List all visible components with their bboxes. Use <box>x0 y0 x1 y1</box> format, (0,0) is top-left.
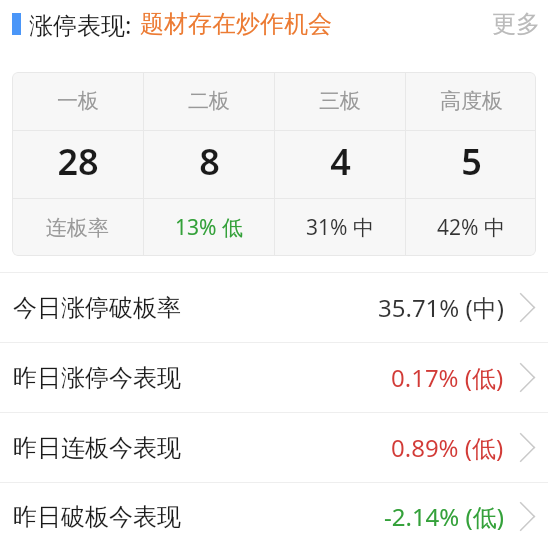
staticText: 昨日连板今表现 <box>13 433 181 463</box>
staticText: 31% 中 <box>306 213 374 242</box>
staticText: 高度板 <box>440 88 503 114</box>
button[interactable]: 更多 <box>482 3 548 45</box>
other: 查看详情 <box>520 293 535 322</box>
staticText: 三板 <box>319 88 361 114</box>
button[interactable]: 8 <box>144 131 274 198</box>
staticText: 二板 <box>188 88 230 114</box>
button[interactable]: 昨日涨停今表现 <box>0 342 548 412</box>
button[interactable]: 28 <box>12 131 143 198</box>
staticText: 0.17% (低) <box>391 361 504 394</box>
other: 查看详情 <box>520 363 535 392</box>
staticText: 0.89% (低) <box>391 431 504 464</box>
button[interactable]: 三板 <box>275 72 405 130</box>
button[interactable]: 连板率 <box>12 199 143 256</box>
staticText: 28 <box>57 137 99 186</box>
staticText: -2.14% (低) <box>384 500 504 533</box>
staticText: 42% 中 <box>437 213 505 242</box>
button[interactable]: 13% 低 <box>144 199 274 256</box>
button[interactable]: 42% 中 <box>406 199 536 256</box>
button[interactable]: 4 <box>275 131 405 198</box>
staticText: 题材存在炒作机会 <box>140 9 332 39</box>
other: 查看详情 <box>520 502 535 531</box>
button[interactable]: 31% 中 <box>275 199 405 256</box>
staticText: 5 <box>461 137 482 186</box>
staticText: 35.71% (中) <box>378 291 504 324</box>
staticText: 更多 <box>492 9 540 39</box>
button[interactable]: 今日涨停破板率 <box>0 272 548 342</box>
staticText: 昨日破板今表现 <box>13 502 181 532</box>
staticText: 8 <box>199 137 220 186</box>
button[interactable]: 昨日破板今表现 <box>0 482 548 550</box>
staticText: 涨停表现: <box>29 8 132 41</box>
staticText: 一板 <box>57 88 99 114</box>
staticText: 4 <box>330 137 351 186</box>
staticText: 连板率 <box>46 215 109 241</box>
staticText: 13% 低 <box>175 213 243 242</box>
staticText: 昨日涨停今表现 <box>13 363 181 393</box>
other: 查看详情 <box>520 433 535 462</box>
button[interactable]: 二板 <box>144 72 274 130</box>
staticText: 今日涨停破板率 <box>13 293 181 323</box>
button[interactable]: 高度板 <box>406 72 536 130</box>
button[interactable]: 昨日连板今表现 <box>0 412 548 482</box>
button[interactable]: 一板 <box>12 72 143 130</box>
button[interactable]: 5 <box>406 131 536 198</box>
